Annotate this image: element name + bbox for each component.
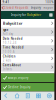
button[interactable]: Babysitter <box>1 19 55 28</box>
staticText: Cares About <box>3 63 21 67</box>
button[interactable]: Closed Requests <box>1 5 29 11</box>
button[interactable]: Tab 4 <box>33 91 44 100</box>
staticText: Babysitter <box>26 13 41 17</box>
staticText: Report <box>43 6 53 9</box>
button[interactable]: Date Needed <box>1 36 55 45</box>
staticText: Inquiry for <box>11 13 26 17</box>
button[interactable]: Accept Inquiry <box>1 73 55 82</box>
staticText: 2 kids <box>3 59 11 62</box>
button[interactable]: Cares About <box>1 63 55 72</box>
button[interactable]: Tab 3 <box>22 91 33 100</box>
staticText: Accept Inquiry <box>8 76 28 79</box>
staticText: Closed Requests <box>4 6 28 9</box>
button[interactable]: Type <box>1 28 55 36</box>
button[interactable]: Tab 2 <box>12 91 22 100</box>
staticText: Babysitter <box>3 21 23 26</box>
button[interactable]: Decline Inquiry <box>1 83 55 91</box>
button[interactable]: Report <box>42 5 55 11</box>
button[interactable]: Children <box>1 54 55 63</box>
staticText: Full day <box>3 32 13 36</box>
staticText: Inquiry <box>31 6 41 9</box>
button[interactable]: Time Needed <box>1 45 55 54</box>
staticText: 10-12-24 <box>3 41 17 45</box>
staticText: Time Needed <box>3 46 24 49</box>
staticText: 10:00 A <box>3 50 15 53</box>
staticText: Type <box>3 28 9 32</box>
staticText: Infants <box>3 67 12 71</box>
staticText: 9:41 <box>2 0 9 4</box>
button[interactable]: Tab 5 <box>44 91 55 100</box>
staticText: 100% <box>45 0 53 4</box>
button[interactable]: Tab 1 <box>1 91 12 100</box>
staticText: Date Needed <box>3 37 23 40</box>
staticText: Children <box>3 55 16 58</box>
staticText: Decline Inquiry <box>8 85 30 89</box>
